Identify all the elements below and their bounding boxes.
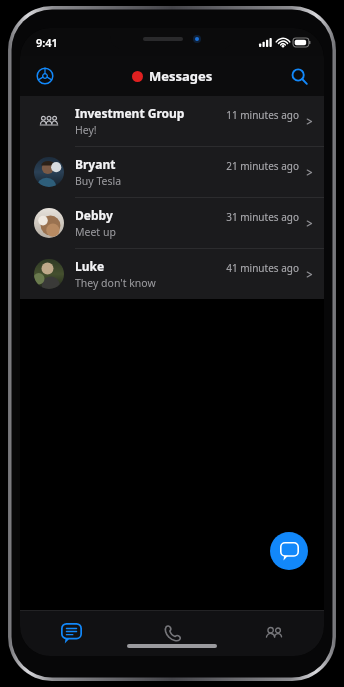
staticText: Bryant (75, 156, 116, 172)
button[interactable]: Contacts (223, 611, 324, 656)
staticText: 41 minutes ago (226, 261, 299, 275)
staticText: They don't know (75, 276, 156, 290)
button[interactable]: Search (283, 60, 315, 92)
staticText: 9:41 (36, 35, 58, 50)
button[interactable]: New message (270, 532, 308, 570)
staticText: Hey! (75, 123, 97, 137)
button[interactable]: Bryant (20, 147, 324, 198)
button[interactable]: Chats (20, 611, 122, 656)
staticText: Investment Group (75, 105, 185, 121)
button[interactable]: Luke (20, 249, 324, 299)
staticText: Debby (75, 207, 113, 223)
staticText: Luke (75, 258, 105, 274)
staticText: 21 minutes ago (226, 159, 299, 173)
staticText: Messages (149, 67, 213, 85)
staticText: Meet up (75, 225, 116, 239)
button[interactable]: Debby (20, 198, 324, 249)
button[interactable]: Calls (122, 611, 223, 656)
button[interactable]: Investment Group (20, 96, 324, 147)
staticText: 31 minutes ago (226, 210, 299, 224)
button[interactable]: Explore (29, 60, 61, 92)
staticText: 11 minutes ago (226, 108, 299, 122)
staticText: Buy Tesla (75, 174, 122, 188)
